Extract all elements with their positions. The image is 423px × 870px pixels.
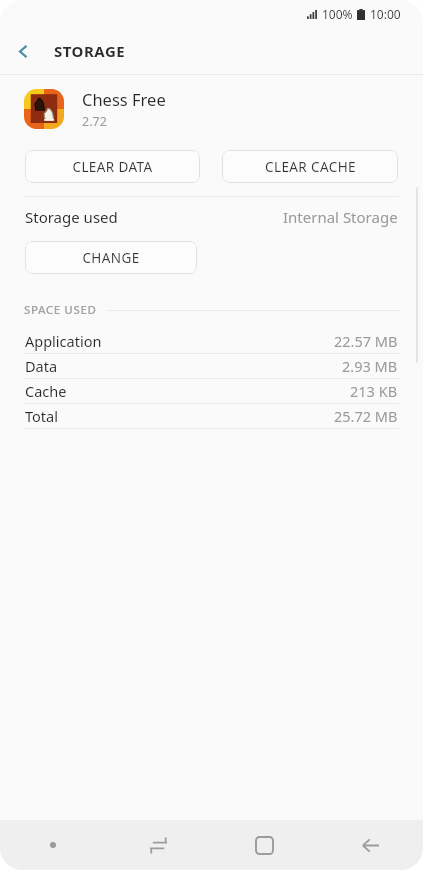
button[interactable]: Application xyxy=(0,329,423,354)
staticText: Storage used xyxy=(25,207,118,227)
staticText: Chess Free xyxy=(82,88,166,110)
button[interactable]: Back xyxy=(0,28,46,74)
staticText: Data xyxy=(25,356,58,376)
staticText: Internal Storage xyxy=(283,207,398,227)
button[interactable]: Back xyxy=(317,820,423,870)
staticText: 22.57 MB xyxy=(334,331,398,351)
staticText: 10:00 xyxy=(370,6,401,22)
button[interactable]: Cache xyxy=(0,379,423,404)
staticText: STORAGE xyxy=(54,41,126,61)
staticText: CLEAR DATA xyxy=(72,158,153,176)
button[interactable]: Recent apps xyxy=(105,820,211,870)
button[interactable]: Hide navigation bar xyxy=(0,820,105,870)
staticText: 2.93 MB xyxy=(342,356,398,376)
staticText: CHANGE xyxy=(82,249,140,267)
button[interactable]: CLEAR CACHE xyxy=(222,150,398,183)
staticText: Total xyxy=(25,406,58,426)
staticText: Cache xyxy=(25,381,67,401)
staticText: 2.72 xyxy=(82,113,107,130)
staticText: Application xyxy=(25,331,102,351)
button[interactable]: CLEAR DATA xyxy=(25,150,200,183)
staticText: SPACE USED xyxy=(24,302,97,318)
button[interactable]: CHANGE xyxy=(25,241,197,274)
button[interactable]: Home xyxy=(211,820,317,870)
button[interactable]: Data xyxy=(0,354,423,379)
staticText: 100% xyxy=(322,6,353,22)
staticText: 25.72 MB xyxy=(334,406,398,426)
button[interactable]: Total xyxy=(0,404,423,429)
staticText: 213 KB xyxy=(350,381,398,401)
staticText: CLEAR CACHE xyxy=(265,158,356,176)
